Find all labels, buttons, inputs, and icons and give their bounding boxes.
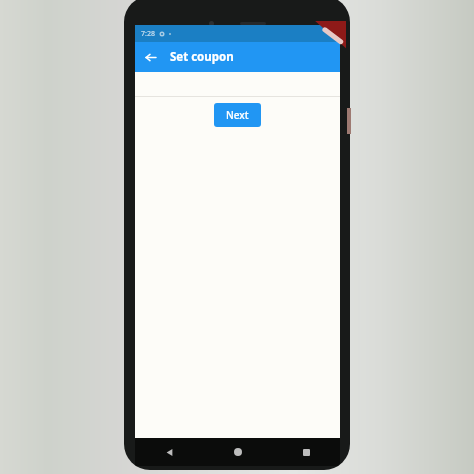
button[interactable]: Home (204, 438, 272, 466)
button[interactable]: Recents (272, 438, 340, 466)
button[interactable]: Back (135, 438, 204, 466)
staticText: 7:28 (141, 29, 155, 39)
button[interactable]: Next (214, 103, 261, 127)
staticText: Set coupon (170, 49, 234, 65)
button[interactable]: Back (135, 42, 165, 72)
staticText: Next (226, 108, 249, 122)
